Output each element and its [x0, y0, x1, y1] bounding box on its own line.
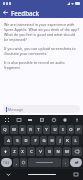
button[interactable]: P	[75, 125, 82, 134]
staticText: T	[37, 127, 40, 133]
staticText: .	[65, 160, 66, 165]
button[interactable]: E	[19, 125, 26, 134]
button[interactable]: U	[51, 125, 58, 134]
button[interactable]: Backspace	[72, 147, 82, 156]
button[interactable]: V	[36, 147, 44, 156]
button[interactable]: Y	[43, 125, 50, 134]
button[interactable]: R	[27, 125, 34, 134]
staticText: D	[24, 138, 28, 144]
button[interactable]: Z	[11, 147, 18, 156]
staticText: J	[59, 138, 61, 144]
staticText: Q	[3, 127, 7, 133]
button[interactable]: Back	[0, 7, 11, 18]
button[interactable]: X	[19, 147, 26, 156]
button[interactable]: ,	[13, 158, 19, 167]
button[interactable]: M	[63, 147, 71, 156]
staticText: G	[42, 138, 46, 144]
staticText: L	[74, 138, 77, 144]
staticText: We are interested in your experience wit…	[4, 22, 79, 42]
button[interactable]: Shift	[1, 147, 10, 156]
staticText: P	[77, 127, 80, 133]
button[interactable]: L	[72, 136, 79, 145]
staticText: A	[7, 138, 10, 144]
button[interactable]: F	[31, 136, 39, 145]
staticText: X	[21, 149, 24, 155]
staticText: It is also possible to record an audio f…	[4, 60, 79, 70]
button[interactable]: S	[13, 136, 21, 145]
button[interactable]: Switch keyboard	[72, 171, 79, 178]
staticText: B	[48, 149, 51, 155]
button[interactable]: C	[27, 147, 35, 156]
button[interactable]: Keyboard tool 0	[3, 116, 10, 123]
button[interactable]: T	[35, 125, 42, 134]
staticText: Y	[45, 127, 48, 133]
staticText: S	[16, 138, 19, 144]
button[interactable]: W	[10, 125, 18, 134]
button[interactable]: .	[62, 158, 69, 167]
button[interactable]: Q	[1, 125, 9, 134]
button[interactable]: Enter	[70, 158, 82, 167]
staticText: U	[53, 127, 57, 133]
staticText: F	[34, 138, 37, 144]
button[interactable]: H	[48, 136, 55, 145]
staticText: Message	[8, 107, 23, 112]
button[interactable]: J	[56, 136, 63, 145]
staticText: K	[66, 138, 69, 144]
button[interactable]: Keyboard tool 6	[73, 116, 80, 123]
button[interactable]: Keyboard tool 3	[38, 116, 45, 123]
staticText: I	[62, 127, 64, 133]
button[interactable]: Space	[28, 158, 61, 167]
button[interactable]: A	[4, 136, 12, 145]
staticText: Z	[13, 149, 16, 155]
staticText: M	[65, 149, 69, 155]
staticText: W	[12, 127, 16, 133]
staticText: ?123	[3, 161, 10, 165]
staticText: Feedback	[11, 9, 40, 17]
button[interactable]: N	[54, 147, 62, 156]
button[interactable]: O	[67, 125, 74, 134]
button[interactable]: ?123	[1, 158, 12, 167]
button[interactable]: Keyboard tool 2	[26, 116, 33, 123]
staticText: ,	[16, 160, 17, 165]
staticText: R	[29, 127, 32, 133]
staticText: O	[69, 127, 73, 133]
staticText: N	[56, 149, 60, 155]
staticText: C	[30, 149, 33, 155]
staticText: E	[21, 127, 24, 133]
button[interactable]: Keyboard tool 4	[50, 116, 57, 123]
button[interactable]: I	[59, 125, 66, 134]
button[interactable]: G	[40, 136, 47, 145]
button[interactable]: Keyboard tool 5	[61, 116, 68, 123]
button[interactable]: Keyboard tool 1	[15, 116, 22, 123]
button[interactable]: Hide keyboard	[5, 171, 12, 178]
staticText: H	[50, 138, 54, 144]
staticText: If you wish, you can upload screenshots …	[4, 46, 79, 56]
button[interactable]: K	[64, 136, 71, 145]
staticText: V	[39, 149, 42, 155]
button[interactable]: D	[22, 136, 30, 145]
button[interactable]: Message	[3, 105, 80, 113]
button[interactable]: B	[45, 147, 53, 156]
button[interactable]: Emoji	[20, 158, 27, 167]
